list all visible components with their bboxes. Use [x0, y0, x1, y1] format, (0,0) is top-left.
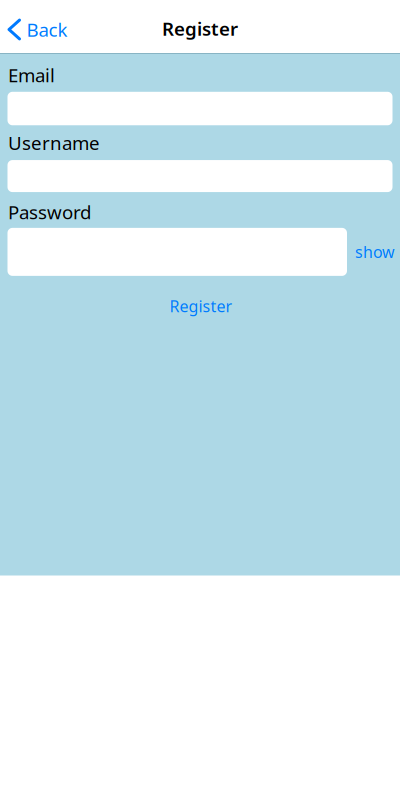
staticText: Back	[26, 17, 67, 42]
staticText: Email	[8, 62, 55, 87]
staticText: Password	[8, 200, 91, 224]
staticText: Username	[8, 130, 100, 155]
staticText: Register	[169, 295, 232, 317]
staticText: Register	[162, 16, 238, 41]
button[interactable]: Register	[153, 287, 248, 325]
button[interactable]: show	[347, 228, 397, 276]
staticText: show	[355, 241, 395, 262]
button[interactable]: Back	[0, 0, 75, 52]
